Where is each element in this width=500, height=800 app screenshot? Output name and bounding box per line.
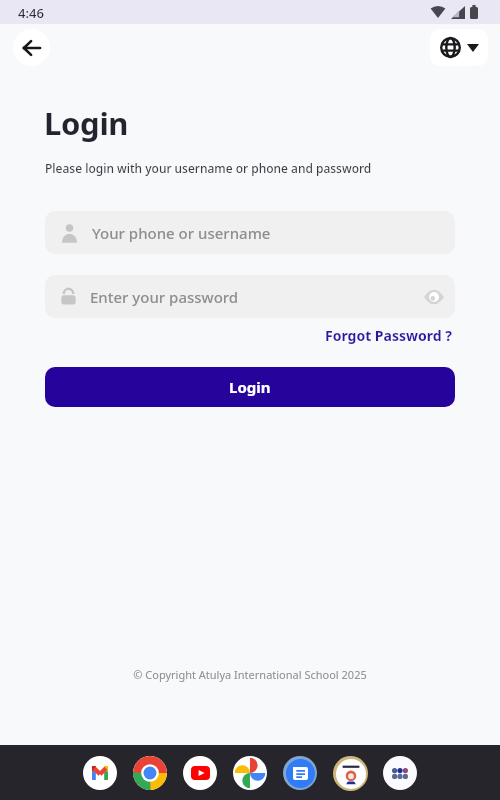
staticText: Login xyxy=(44,102,129,144)
staticText: Login xyxy=(229,377,271,397)
button[interactable]: Enter your password xyxy=(45,275,455,318)
button[interactable]: Forgot Password ? xyxy=(325,326,452,345)
button[interactable] xyxy=(233,756,267,790)
button[interactable] xyxy=(383,756,417,790)
staticText: Forgot Password ? xyxy=(325,326,452,345)
staticText: © Copyright Atulya International School … xyxy=(0,667,500,682)
staticText: 4:46 xyxy=(18,4,44,22)
button[interactable] xyxy=(183,756,217,790)
staticText: Your phone or username xyxy=(92,223,271,243)
button[interactable] xyxy=(83,756,117,790)
button[interactable]: Login xyxy=(45,367,455,407)
button[interactable]: Your phone or username xyxy=(45,211,455,254)
button[interactable] xyxy=(13,29,50,66)
button[interactable] xyxy=(133,756,167,790)
staticText: Please login with your username or phone… xyxy=(45,160,372,176)
button[interactable] xyxy=(430,29,488,66)
button[interactable] xyxy=(283,756,317,790)
button[interactable] xyxy=(333,756,368,791)
staticText: Enter your password xyxy=(90,287,424,307)
